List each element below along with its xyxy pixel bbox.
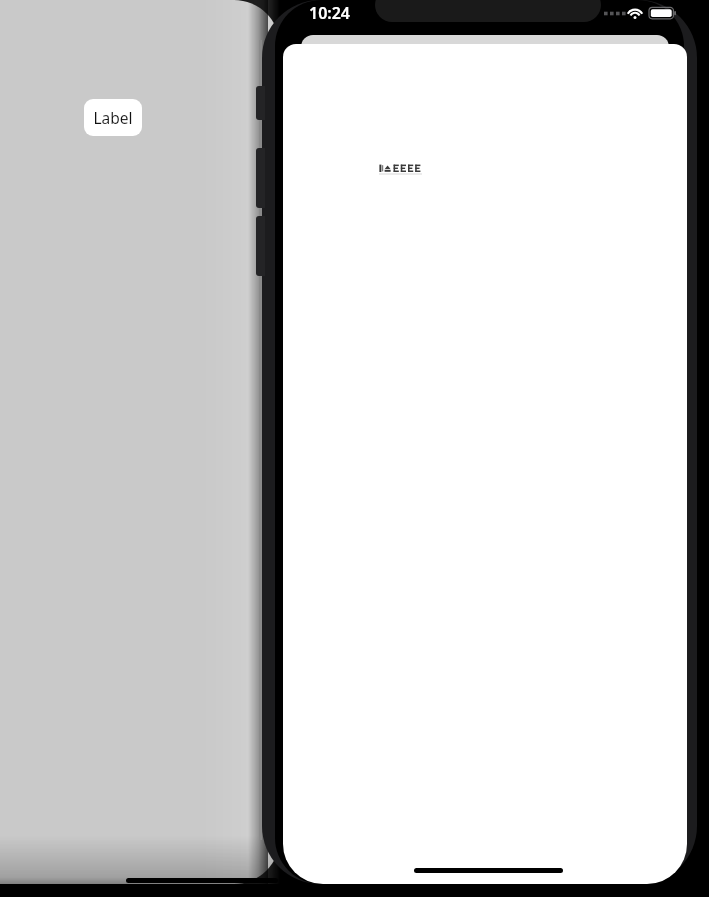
button[interactable]: Toolbar (379, 163, 425, 175)
button[interactable]: Side button (256, 216, 265, 276)
button[interactable]: Label (84, 99, 142, 136)
staticText: 10:24 (309, 2, 351, 24)
button[interactable]: Side button (256, 148, 265, 208)
staticText: Label (93, 107, 133, 128)
button[interactable]: Side button (256, 86, 265, 120)
